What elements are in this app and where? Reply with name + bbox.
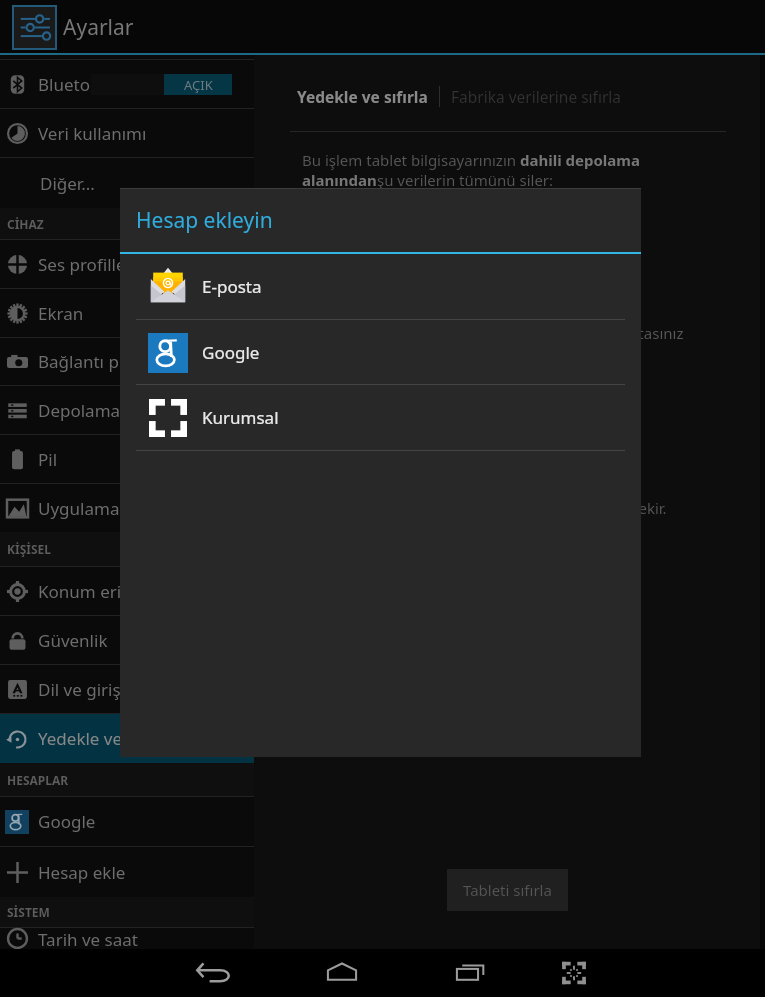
button[interactable]: Ekran (0, 289, 254, 338)
staticText: Yedekle ve sıfırla (297, 86, 428, 107)
staticText: Ekran (38, 302, 84, 325)
staticText: Google (38, 810, 96, 833)
button[interactable]: Hesap ekle (0, 847, 254, 897)
staticText: şu verilerin tümünü siler: (377, 170, 554, 190)
staticText: Hesap ekle (38, 861, 126, 884)
button[interactable]: Back (191, 953, 237, 993)
staticText: Veri kullanımı (38, 122, 147, 145)
button[interactable]: E-posta (120, 254, 641, 320)
staticText: Fabrika verilerine sıfırla (451, 86, 622, 107)
button[interactable]: Yedekle ve sıfırla (297, 86, 428, 107)
button[interactable]: Depolama (0, 386, 254, 435)
staticText: Bu işlem tablet bilgisayarınızın (302, 150, 520, 170)
button[interactable]: Dil ve giriş (0, 665, 254, 714)
button[interactable]: Recents (448, 953, 494, 993)
staticText: Şu anda şu hesaplarda oturum açmış bulun… (302, 323, 684, 343)
staticText: Tarih ve saat (38, 928, 138, 949)
button[interactable]: Ses profilleri (0, 240, 254, 289)
button[interactable]: Home (319, 953, 365, 993)
staticText: İndirilen uygulamalar (314, 252, 466, 272)
staticText: E-posta (202, 275, 262, 298)
staticText: Konum erişimi (38, 580, 154, 603)
button[interactable]: Pil (0, 435, 254, 484)
button[interactable]: Veri kullanımı (0, 109, 254, 158)
staticText: Ayarlar (63, 13, 134, 42)
staticText: alanından (302, 170, 377, 190)
staticText: Bağlantı profilleri (38, 350, 176, 373)
staticText: SİSTEM (7, 904, 50, 920)
button[interactable]: Diğer... (0, 158, 254, 208)
staticText: CİHAZ (7, 216, 44, 232)
button[interactable]: Bağlantı profilleri (0, 338, 254, 386)
staticText: Ses profilleri (38, 253, 137, 276)
staticText: HESAPLAR (7, 772, 69, 788)
button[interactable]: AÇIK (91, 74, 232, 95)
staticText: Hesap ekleyin (136, 206, 273, 235)
staticText: AÇIK (184, 76, 213, 94)
staticText: Uygulamalar (38, 497, 141, 520)
staticText: Google (202, 341, 260, 364)
staticText: Tableti sıfırla (463, 880, 552, 900)
staticText: Yedekle ve sıfırla (38, 727, 171, 750)
button[interactable]: Yedekle ve sıfırla (0, 714, 254, 763)
button[interactable]: Güvenlik (0, 616, 254, 665)
button[interactable]: Konum erişimi (0, 567, 254, 616)
button[interactable]: Screenshot (551, 953, 597, 993)
staticText: Güvenlik (38, 629, 108, 652)
staticText: Pil (38, 448, 58, 471)
button[interactable]: Tableti sıfırla (447, 869, 568, 911)
button[interactable]: Google (0, 797, 254, 847)
staticText: de silinmesi için SD kartını biçimlendir… (302, 498, 667, 518)
staticText: Kurumsal (202, 406, 279, 429)
button[interactable]: Uygulamalar (0, 484, 254, 532)
staticText: Dil ve giriş (38, 678, 121, 701)
staticText: dahili depolama (520, 150, 640, 170)
staticText: Bluetooth (38, 73, 117, 96)
button[interactable]: Kurumsal (120, 385, 641, 451)
button[interactable]: Google (120, 320, 641, 385)
button[interactable]: Settings (13, 6, 56, 49)
button[interactable]: Tarih ve saat (0, 928, 254, 949)
staticText: KİŞİSEL (7, 541, 51, 557)
staticText: Depolama (38, 399, 121, 422)
staticText: Diğer... (40, 172, 95, 195)
button[interactable]: Fabrika verilerine sıfırla (451, 86, 622, 107)
button[interactable]: Bluetooth (0, 60, 254, 109)
